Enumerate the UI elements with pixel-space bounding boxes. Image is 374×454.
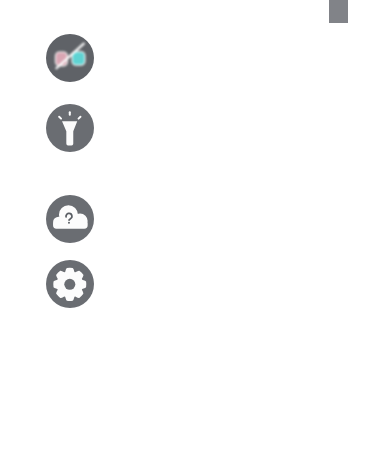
button[interactable]: Settings <box>46 260 94 308</box>
button[interactable]: Flashlight <box>46 104 94 152</box>
button[interactable]: Weather <box>46 195 94 243</box>
button[interactable]: Media off <box>46 34 94 82</box>
